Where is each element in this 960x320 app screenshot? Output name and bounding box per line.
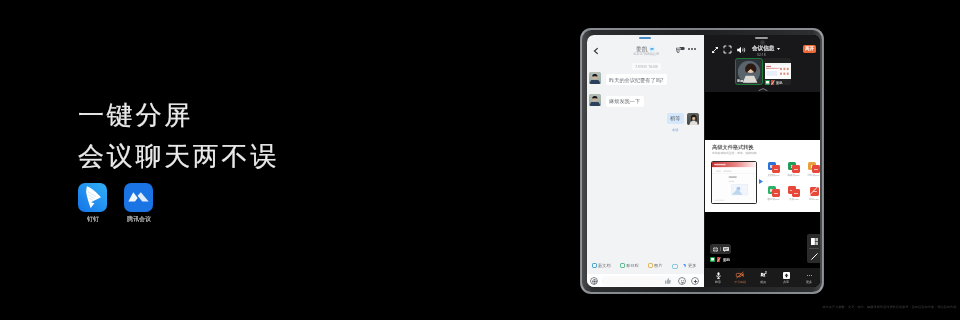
staticText: PDF	[790, 189, 794, 192]
button[interactable]: Split screen handle	[639, 37, 651, 39]
staticText: 会议聊天两不误	[78, 140, 279, 173]
button[interactable]: 钉钉	[78, 183, 107, 223]
staticText: 更多	[688, 263, 697, 268]
button[interactable]: Split screen handle	[755, 37, 768, 39]
button[interactable]: 昨天的会议纪要有了吗?	[606, 74, 667, 85]
staticText: 7月9日 10:08	[635, 64, 658, 69]
button[interactable]: Self video	[735, 58, 763, 85]
button[interactable]: 离开	[803, 45, 816, 53]
staticText: 昨天的会议纪要有了吗?	[609, 76, 664, 83]
staticText: 开启视频	[734, 280, 746, 284]
staticText: 一键分屏	[78, 99, 193, 132]
button[interactable]: P	[805, 161, 820, 176]
staticText: PDF	[813, 190, 817, 193]
button[interactable]: 看日程	[620, 263, 639, 268]
button[interactable]: 共享	[777, 271, 795, 284]
button[interactable]: PDF	[805, 185, 820, 200]
button[interactable]: Avatar	[589, 94, 601, 106]
button[interactable]: 更多	[682, 263, 697, 268]
staticText: X	[791, 164, 794, 169]
staticText: 腾讯会议	[127, 215, 151, 223]
button[interactable]: Avatar	[589, 72, 601, 84]
staticText: 离开	[805, 46, 815, 52]
button[interactable]: N	[765, 185, 782, 200]
button[interactable]: 姜凯	[636, 45, 655, 52]
staticText: 幻灯转PDF	[807, 173, 820, 176]
staticText: 看日程	[626, 263, 639, 268]
staticText: 支持多种格式互转，简单、快捷转换	[712, 151, 757, 155]
staticText: P	[811, 164, 814, 169]
staticText: 图片及产品参数、文字、图片、视频等相关宣传资料仅供参考，实际以实物为准，请以实物…	[822, 305, 960, 309]
staticText: PDF	[814, 168, 818, 171]
staticText: 李曼	[737, 79, 744, 83]
staticText: 姜凯	[723, 258, 730, 262]
staticText: 未读	[672, 128, 679, 132]
staticText: 姜凯	[776, 81, 783, 85]
button[interactable]: Message input	[601, 276, 690, 286]
button[interactable]: W	[765, 161, 782, 176]
staticText: PDF	[794, 192, 798, 195]
button[interactable]: 新文档	[592, 263, 611, 268]
button[interactable]: Preview	[712, 162, 756, 203]
staticText: 稍等	[670, 115, 681, 122]
button[interactable]: 更多	[800, 271, 818, 284]
staticText: PDF	[774, 192, 778, 195]
staticText: 更多	[806, 280, 812, 284]
staticText: 北京字节跳动公司	[633, 52, 660, 56]
button[interactable]: Avatar	[687, 113, 699, 125]
button[interactable]: Video call	[675, 44, 685, 54]
button[interactable]: 会议信息	[752, 45, 780, 52]
button[interactable]: X	[785, 161, 802, 176]
staticText: 麻烦发我一下	[609, 98, 641, 105]
button[interactable]: 开启视频	[731, 271, 749, 284]
button[interactable]: Network and chat	[710, 244, 731, 254]
staticText: PDF	[794, 168, 798, 171]
staticText: 静音	[715, 280, 721, 284]
staticText: 图片转PDF	[767, 197, 780, 200]
button[interactable]: 稍等	[667, 113, 684, 124]
staticText: 文档转PDF	[767, 173, 780, 176]
staticText: 表格转PDF	[787, 173, 800, 176]
button[interactable]: 2	[754, 271, 772, 284]
staticText: 2	[765, 271, 767, 275]
button[interactable]: 麻烦发我一下	[606, 96, 644, 107]
staticText: 拆分PDF	[809, 197, 819, 200]
staticText: 合并PDF	[789, 197, 799, 200]
button[interactable]: Layout	[807, 234, 820, 248]
staticText: 共享	[783, 280, 789, 284]
button[interactable]: 静音	[709, 271, 727, 284]
button[interactable]: PDF	[785, 185, 802, 200]
button[interactable]: Shared screen	[763, 58, 791, 85]
button[interactable]: Like	[664, 277, 672, 285]
staticText: 成员	[760, 280, 766, 284]
button[interactable]: Voice	[590, 277, 598, 285]
button[interactable]: Speaker	[736, 45, 745, 54]
button[interactable]: Add	[691, 277, 699, 285]
staticText: 钉钉	[87, 215, 99, 223]
button[interactable]: Folder	[672, 264, 678, 269]
button[interactable]: 高级文件格式转换	[705, 140, 820, 212]
button[interactable]: Back	[590, 45, 601, 56]
button[interactable]: Switch camera	[710, 45, 719, 54]
button[interactable]: 腾讯会议	[124, 183, 153, 223]
button[interactable]: More	[687, 44, 697, 54]
staticText: 新文档	[598, 263, 611, 268]
staticText: 02:18	[757, 52, 766, 57]
button[interactable]: 图片	[648, 263, 663, 268]
staticText: N	[770, 188, 774, 193]
staticText: 高级文件格式转换	[712, 144, 754, 151]
button[interactable]: Full screen	[723, 45, 732, 54]
button[interactable]: Annotate	[807, 249, 820, 263]
staticText: 姜凯	[636, 45, 648, 52]
button[interactable]: Emoji	[678, 277, 686, 285]
staticText: W	[770, 164, 774, 169]
staticText: PDF	[774, 168, 778, 171]
staticText: 图片	[654, 263, 663, 268]
staticText: 会议信息	[752, 45, 775, 52]
